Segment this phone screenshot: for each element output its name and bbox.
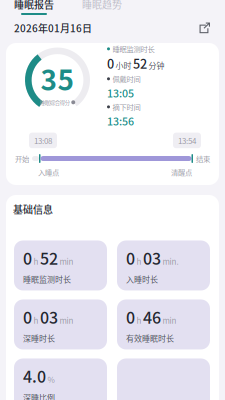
staticText: min (162, 314, 176, 326)
staticText: 清醒点 (171, 167, 192, 177)
button[interactable]: 分享 (198, 21, 211, 34)
staticText: 佩戴时间 (112, 73, 140, 84)
staticText: 0 (23, 246, 32, 269)
staticText: 0 (23, 305, 32, 328)
staticText: 睡眠监测时长 (23, 273, 71, 285)
staticText: 有效睡眠时长 (126, 332, 174, 344)
staticText: 入睡时长 (126, 273, 158, 285)
staticText: 35 (40, 58, 74, 98)
staticText: min. (162, 255, 178, 267)
staticText: h (33, 314, 38, 326)
staticText: 0 (126, 246, 135, 269)
staticText: min (59, 314, 73, 326)
staticText: 基础信息 (13, 202, 53, 216)
staticText: 睡眠报告 (14, 0, 54, 11)
staticText: 睡眠监测时长 (112, 43, 154, 54)
staticText: 13:56 (107, 113, 134, 129)
staticText: 睡眠趋势 (82, 0, 122, 11)
staticText: 深睡时长 (23, 332, 55, 344)
staticText: h (33, 255, 38, 267)
staticText: 0 (107, 54, 114, 72)
staticText: 46 (143, 305, 161, 328)
staticText: 开始 (15, 153, 29, 164)
staticText: 摘下时间 (112, 102, 140, 112)
staticText: h (136, 255, 141, 267)
staticText: 2026年01月16日 (14, 21, 92, 35)
staticText: 分钟 (148, 60, 164, 71)
staticText: h (136, 314, 141, 326)
staticText: 入睡点 (38, 167, 59, 177)
staticText: 13:54 (178, 135, 196, 146)
button[interactable]: 睡眠报告 (0, 0, 68, 12)
staticText: 13:05 (107, 85, 134, 100)
staticText: 03 (143, 246, 161, 269)
staticText: 03 (40, 305, 58, 328)
staticText: % (47, 373, 54, 385)
staticText: 深睡比例 (23, 391, 55, 400)
staticText: min (59, 255, 73, 267)
staticText: 13:08 (34, 135, 52, 146)
staticText: 4.0 (23, 364, 46, 387)
staticText: 结束 (196, 153, 210, 164)
staticText: 52 (133, 54, 147, 72)
button[interactable]: 睡眠趋势 (68, 0, 136, 12)
staticText: 52 (40, 246, 58, 269)
staticText: 睡眠综合得分 (40, 98, 70, 106)
staticText: 小时 (115, 60, 131, 71)
staticText: 0 (126, 305, 135, 328)
